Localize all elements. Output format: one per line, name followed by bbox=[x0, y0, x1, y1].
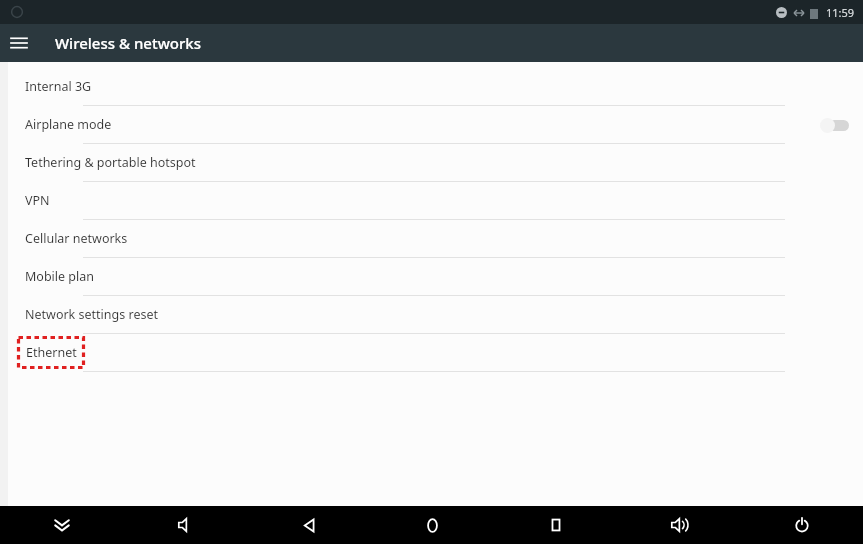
button[interactable]: Recent apps bbox=[494, 506, 617, 544]
button[interactable]: Tethering & portable hotspot bbox=[8, 144, 863, 181]
staticText: VPN bbox=[25, 192, 50, 209]
staticText: Wireless & networks bbox=[55, 33, 201, 53]
staticText: Cellular networks bbox=[25, 230, 128, 247]
staticText: Tethering & portable hotspot bbox=[25, 154, 196, 171]
staticText: Internal 3G bbox=[25, 78, 92, 95]
button[interactable]: Airplane mode bbox=[8, 106, 863, 143]
button[interactable]: Home bbox=[371, 506, 494, 544]
button[interactable]: Internal 3G bbox=[8, 68, 863, 105]
staticText: Airplane mode bbox=[25, 116, 112, 133]
button[interactable]: Volume up bbox=[617, 506, 740, 544]
button[interactable]: Network settings reset bbox=[8, 296, 863, 333]
button[interactable]: Back bbox=[248, 506, 371, 544]
button[interactable]: VPN bbox=[8, 182, 863, 219]
staticText: Mobile plan bbox=[25, 268, 94, 285]
staticText: Ethernet bbox=[26, 344, 77, 361]
button[interactable]: Open navigation menu bbox=[0, 24, 38, 62]
staticText: 11:59 bbox=[826, 5, 855, 20]
button[interactable]: Collapse bbox=[0, 506, 124, 544]
button[interactable]: Airplane mode toggle, off bbox=[819, 115, 853, 135]
button[interactable]: Ethernet bbox=[8, 334, 863, 371]
staticText: Network settings reset bbox=[25, 306, 158, 323]
button[interactable]: Power bbox=[740, 506, 863, 544]
button[interactable]: Cellular networks bbox=[8, 220, 863, 257]
button[interactable]: Mobile plan bbox=[8, 258, 863, 295]
button[interactable]: Volume down bbox=[124, 506, 248, 544]
